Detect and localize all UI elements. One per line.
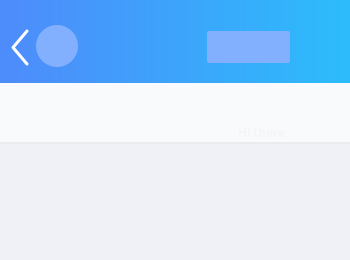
button[interactable]: Back <box>0 0 27 64</box>
button[interactable]: Title <box>0 0 290 63</box>
button[interactable]: Profile <box>0 0 79 67</box>
